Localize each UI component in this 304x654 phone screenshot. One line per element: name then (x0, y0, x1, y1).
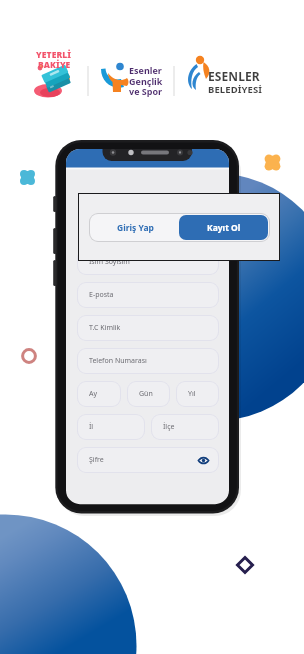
button[interactable]: İl (78, 415, 144, 439)
button[interactable]: İlçe (152, 415, 218, 439)
staticText: Telefon Numarası (89, 356, 147, 366)
button[interactable]: E-posta (78, 283, 218, 307)
staticText: ESENLER (208, 68, 260, 84)
staticText: İl (89, 422, 94, 432)
button[interactable]: Ay (78, 382, 120, 406)
staticText: YETERLİ (36, 49, 72, 61)
staticText: İsim Soyisim (89, 257, 130, 267)
staticText: Esenler (129, 64, 162, 76)
staticText: E-posta (89, 290, 114, 300)
staticText: ve Spor (129, 85, 163, 97)
button[interactable]: Yıl (177, 382, 218, 406)
button[interactable]: T.C Kimlik (78, 316, 218, 340)
button[interactable]: Gün (128, 382, 169, 406)
staticText: T.C Kimlik (89, 323, 121, 333)
button[interactable]: İsim Soyisim (78, 250, 218, 274)
button[interactable]: Kayıt Ol (179, 215, 268, 240)
staticText: Gençlik (129, 75, 163, 87)
button[interactable]: Telefon Numarası (78, 349, 218, 373)
staticText: Giriş Yap (117, 222, 154, 234)
staticText: Ay (89, 389, 98, 399)
staticText: Şifre (89, 455, 104, 465)
button[interactable]: Şifreyi göster (198, 455, 209, 466)
staticText: Kayıt Ol (207, 222, 241, 234)
button[interactable]: Şifre (78, 448, 218, 472)
staticText: BAKİYE (38, 59, 71, 71)
staticText: İlçe (163, 422, 175, 432)
staticText: BELEDİYESİ (208, 83, 263, 96)
staticText: Gün (139, 389, 153, 399)
button[interactable]: Giriş Yap (91, 215, 179, 240)
staticText: Yıl (188, 389, 196, 399)
